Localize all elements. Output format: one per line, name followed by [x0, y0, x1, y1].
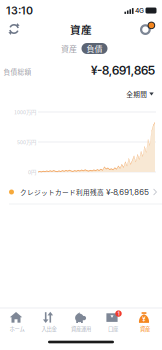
staticText: 4G	[135, 6, 144, 15]
staticText: 負債	[86, 43, 102, 54]
staticText: ¥-8,691,865	[91, 63, 155, 78]
staticText: ¥-8,691,865	[106, 187, 149, 197]
staticText: 入出金	[41, 325, 56, 333]
staticText: 口座	[108, 325, 118, 333]
button[interactable]: ホーム	[1, 310, 33, 334]
staticText: 資産運用	[71, 325, 91, 333]
staticText: クレジットカード利用残高	[20, 187, 104, 197]
button[interactable]: 入出金	[33, 310, 65, 334]
button[interactable]: 資産運用	[65, 310, 97, 334]
staticText: 1	[117, 310, 119, 317]
button[interactable]: 資産	[57, 43, 81, 54]
staticText: 0円	[28, 168, 36, 176]
staticText: 1000万円	[14, 108, 36, 116]
staticText: 資産	[61, 43, 77, 54]
button[interactable]: 全期間	[126, 89, 154, 99]
staticText: 資産	[140, 325, 150, 333]
staticText: ¥	[142, 315, 146, 323]
button[interactable]: 負債	[81, 43, 107, 54]
staticText: 全期間	[126, 89, 147, 99]
button[interactable]: クレジットカード利用残高	[0, 181, 162, 203]
staticText: 資産	[70, 21, 92, 37]
staticText: 13:10	[6, 4, 33, 17]
button[interactable]: ¥	[129, 310, 161, 334]
button[interactable]: 1	[97, 310, 129, 334]
staticText: 負債総額	[3, 67, 31, 76]
staticText: ホーム	[9, 325, 24, 333]
button[interactable]: Refresh	[5, 20, 23, 38]
staticText: 500万円	[17, 138, 36, 146]
button[interactable]: Account	[137, 20, 157, 40]
